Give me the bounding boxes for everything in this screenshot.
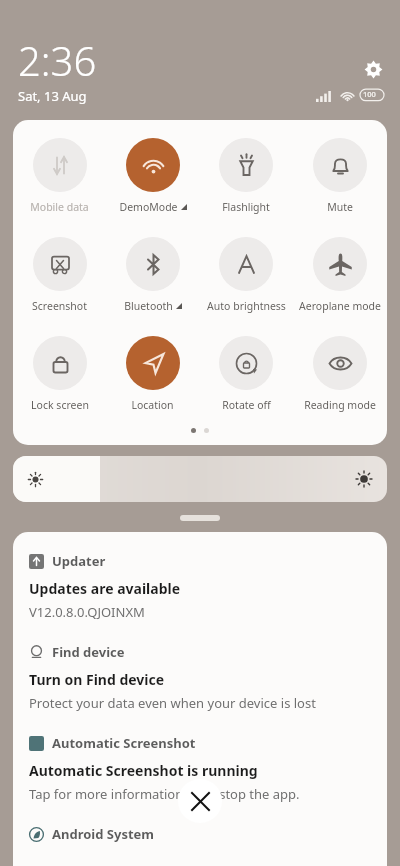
button[interactable]: Brightness [13,456,387,502]
staticText: Find device [52,643,125,661]
staticText: Auto brightness [207,299,286,313]
button[interactable]: Close notifications [178,779,222,823]
staticText: 100 [363,89,376,99]
staticText: Location [131,398,174,412]
button[interactable]: DemoMode [106,136,199,216]
button[interactable]: Find device [29,643,371,712]
staticText: V12.0.8.0.QJOINXM [29,603,145,621]
staticText: DemoMode [119,200,178,214]
button[interactable]: Mute [293,136,387,216]
button[interactable]: Auto brightness [199,235,293,315]
button[interactable]: Reading mode [293,334,387,414]
staticText: Reading mode [304,398,376,412]
button[interactable]: Updater [29,552,371,621]
staticText: Turn on Find device [29,670,165,689]
staticText: Automatic Screenshot is running [29,761,258,780]
staticText: Flashlight [222,200,270,214]
staticText: Lock screen [31,398,89,412]
button[interactable]: Aeroplane mode [293,235,387,315]
staticText: 2:36 [18,33,97,87]
staticText: Updates are available [29,579,181,598]
button[interactable]: Screenshot [13,235,106,315]
button[interactable]: Location [106,334,199,414]
staticText: Screenshot [32,299,87,313]
staticText: Android System [52,825,155,843]
staticText: Aeroplane mode [299,299,381,313]
button[interactable]: Mobile data [13,136,106,216]
staticText: Mobile data [30,200,89,214]
button[interactable]: Bluetooth [106,235,199,315]
button[interactable]: Rotate off [199,334,293,414]
staticText: Sat, 13 Aug [18,87,87,105]
staticText: Updater [52,552,106,570]
staticText: Automatic Screenshot [52,734,196,752]
staticText: Tap for more information or to stop the … [29,785,300,803]
button[interactable]: Settings [358,54,388,84]
staticText: Mute [327,200,353,214]
staticText: Rotate off [222,398,271,412]
button[interactable]: Automatic Screenshot [29,734,371,803]
staticText: Protect your data even when your device … [29,694,316,712]
staticText: Bluetooth [124,299,173,313]
button[interactable]: Lock screen [13,334,106,414]
button[interactable]: Flashlight [199,136,293,216]
